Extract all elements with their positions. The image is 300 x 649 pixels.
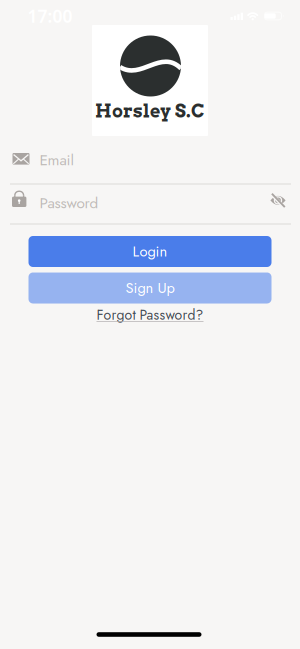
button[interactable]: Forgot Password? bbox=[96, 305, 203, 325]
staticText: Sign Up bbox=[125, 277, 174, 299]
button[interactable]: Login bbox=[28, 236, 271, 267]
staticText: 17:00 bbox=[27, 4, 72, 27]
button[interactable]: Sign Up bbox=[28, 272, 271, 303]
staticText: Forgot Password? bbox=[96, 305, 203, 325]
staticText: Horsley S.C bbox=[95, 100, 205, 122]
staticText: Login bbox=[132, 241, 167, 262]
staticText: Password bbox=[39, 192, 98, 214]
button[interactable]: Show password bbox=[266, 188, 290, 212]
staticText: Email bbox=[39, 149, 74, 171]
